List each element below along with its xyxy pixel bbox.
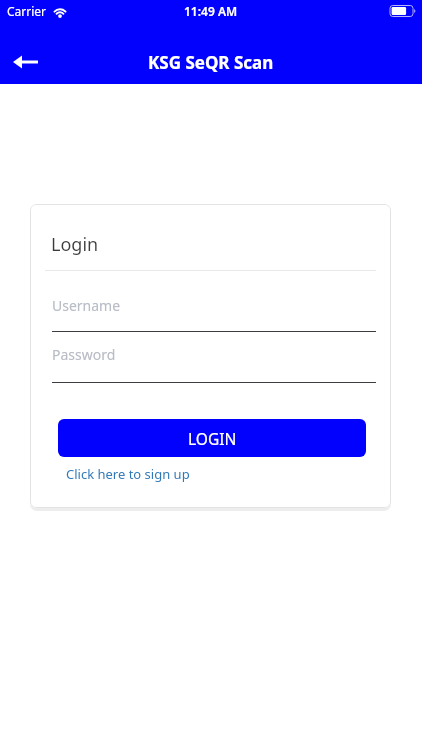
staticText: 11:49 AM <box>184 3 238 19</box>
button[interactable]: LOGIN <box>58 419 366 457</box>
staticText: Username <box>52 296 121 315</box>
button[interactable]: Username <box>52 296 376 315</box>
button[interactable] <box>10 50 40 74</box>
staticText: Password <box>52 345 116 364</box>
button[interactable]: Click here to sign up <box>66 465 190 483</box>
button[interactable]: Password <box>52 345 376 364</box>
staticText: Click here to sign up <box>66 465 190 483</box>
staticText: KSG SeQR Scan <box>148 51 274 74</box>
staticText: LOGIN <box>188 428 237 449</box>
staticText: Carrier <box>7 3 47 19</box>
staticText: Login <box>51 232 99 257</box>
